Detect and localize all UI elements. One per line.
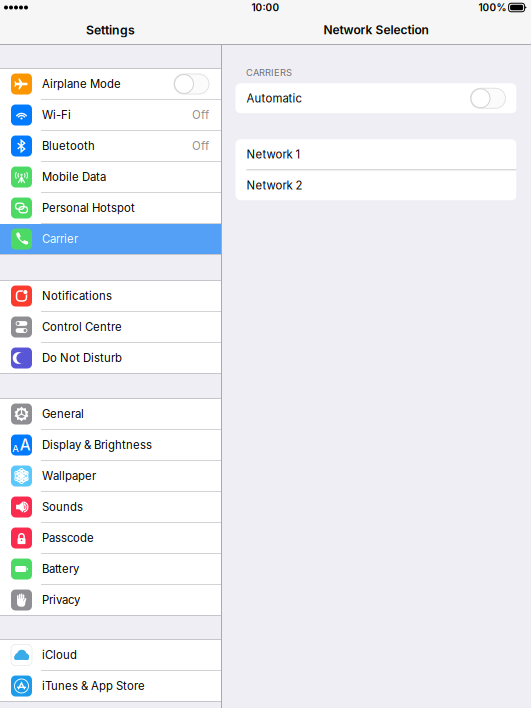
staticText: Do Not Disturb xyxy=(42,351,122,365)
staticText: Off xyxy=(192,139,209,153)
staticText: Network 1 xyxy=(246,147,300,161)
staticText: CARRIERS xyxy=(246,67,292,78)
staticText: Mobile Data xyxy=(42,170,106,184)
staticText: 100% xyxy=(478,1,506,14)
staticText: 10:00 xyxy=(251,1,279,14)
staticText: Bluetooth xyxy=(42,139,95,153)
button[interactable]: Do Not Disturb xyxy=(0,343,221,373)
button[interactable]: Wallpaper xyxy=(0,461,221,491)
button[interactable]: Wi-Fi xyxy=(0,100,221,130)
staticText: Off xyxy=(192,108,209,122)
staticText: Display & Brightness xyxy=(42,438,152,452)
staticText: Sounds xyxy=(42,500,83,514)
staticText: Battery xyxy=(42,562,79,576)
button[interactable]: Battery xyxy=(0,554,221,584)
button[interactable]: Carrier xyxy=(0,224,221,254)
staticText: Airplane Mode xyxy=(42,77,121,91)
staticText: iCloud xyxy=(42,648,77,662)
button[interactable]: A xyxy=(0,430,221,460)
staticText: Personal Hotspot xyxy=(42,201,135,215)
staticText: Notifications xyxy=(42,289,112,303)
button[interactable]: iTunes & App Store xyxy=(0,671,221,701)
staticText: Wi-Fi xyxy=(42,108,71,122)
staticText: Settings xyxy=(86,23,135,37)
button[interactable]: Mobile Data xyxy=(0,162,221,192)
button[interactable]: Privacy xyxy=(0,585,221,615)
button[interactable]: Bluetooth xyxy=(0,131,221,161)
button[interactable]: iCloud xyxy=(0,640,221,670)
staticText: General xyxy=(42,407,84,421)
button[interactable]: Notifications xyxy=(0,281,221,311)
button[interactable]: Airplane Mode xyxy=(0,69,221,99)
button[interactable]: Sounds xyxy=(0,492,221,522)
staticText: Network 2 xyxy=(246,178,302,192)
staticText: Privacy xyxy=(42,593,80,607)
staticText: Passcode xyxy=(42,531,94,545)
button[interactable]: Passcode xyxy=(0,523,221,553)
staticText: Control Centre xyxy=(42,320,122,334)
button[interactable]: Personal Hotspot xyxy=(0,193,221,223)
staticText: A xyxy=(20,436,31,454)
button[interactable]: Automatic xyxy=(235,83,516,113)
button[interactable]: General xyxy=(0,399,221,429)
staticText: Carrier xyxy=(42,232,78,246)
button[interactable]: Network 2 xyxy=(235,170,516,200)
button[interactable]: Control Centre xyxy=(0,312,221,342)
staticText: Network Selection xyxy=(323,23,428,37)
staticText: iTunes & App Store xyxy=(42,679,145,693)
staticText: Wallpaper xyxy=(42,469,96,483)
staticText: Automatic xyxy=(246,91,301,105)
button[interactable]: Network 1 xyxy=(235,139,516,169)
staticText: A xyxy=(12,443,19,454)
